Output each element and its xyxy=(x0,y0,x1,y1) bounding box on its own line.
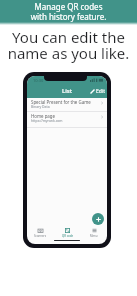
button[interactable]: Scanners xyxy=(27,228,53,238)
button[interactable]: Edit xyxy=(88,87,107,96)
staticText: Binary Data xyxy=(31,104,50,109)
staticText: List xyxy=(62,87,73,95)
staticText: Menu xyxy=(90,234,98,238)
button[interactable]: Special Present for the Game xyxy=(27,98,107,111)
staticText: Edit xyxy=(96,88,105,95)
staticText: QR code xyxy=(62,234,73,238)
staticText: Scanners xyxy=(34,234,46,238)
staticText: Special Present for the Game xyxy=(31,99,91,105)
button[interactable]: Add xyxy=(92,213,104,225)
button[interactable]: Home page xyxy=(27,112,107,127)
staticText: https://myrank.com xyxy=(31,118,63,123)
staticText: 10:30 xyxy=(33,78,44,83)
staticText: Home page xyxy=(31,113,55,119)
button[interactable]: QR code xyxy=(54,228,80,238)
button[interactable]: Menu xyxy=(81,228,107,238)
staticText: Manage QR codes with history feature. xyxy=(0,1,137,22)
staticText: You can edit the name as you like. xyxy=(0,27,137,63)
